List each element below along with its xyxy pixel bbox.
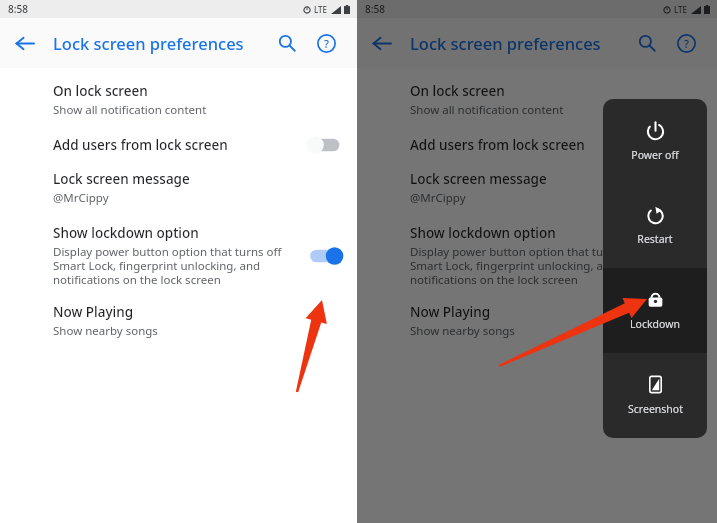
staticText: Power off: [631, 148, 679, 162]
staticText: LTE: [314, 4, 328, 15]
button[interactable]: Help: [667, 24, 705, 62]
button[interactable]: Power off: [603, 99, 707, 183]
button[interactable]: Now Playing: [0, 303, 357, 339]
staticText: LTE: [674, 4, 688, 15]
staticText: Show all notification content: [410, 102, 564, 118]
staticText: Lock screen message: [53, 170, 190, 188]
button[interactable]: Help: [307, 24, 345, 62]
staticText: Display power button option that turns o…: [53, 244, 297, 287]
staticText: Now Playing: [410, 303, 491, 321]
button[interactable]: Screenshot: [603, 353, 707, 438]
button[interactable]: Show lockdown option: [357, 224, 717, 287]
staticText: Show nearby songs: [410, 323, 515, 339]
staticText: On lock screen: [410, 82, 505, 100]
staticText: Screenshot: [628, 402, 683, 416]
staticText: Now Playing: [53, 303, 134, 321]
staticText: Restart: [637, 232, 673, 246]
staticText: Display power button option that turns o…: [410, 244, 657, 287]
button[interactable]: On lock screen: [357, 82, 717, 118]
staticText: Show lockdown option: [53, 224, 199, 242]
staticText: Lock screen preferences: [53, 32, 244, 54]
button[interactable]: Show lockdown option: [0, 224, 357, 287]
staticText: @MrCippy: [410, 190, 466, 206]
button[interactable]: Back: [5, 24, 43, 62]
button[interactable]: Off: [305, 134, 345, 156]
staticText: 8:58: [365, 2, 385, 16]
button[interactable]: Lock screen message: [0, 170, 357, 206]
button[interactable]: Back: [362, 24, 400, 62]
staticText: ?: [684, 36, 689, 51]
staticText: 8:58: [8, 2, 28, 16]
staticText: Add users from lock screen: [53, 136, 228, 154]
staticText: Show nearby songs: [53, 323, 158, 339]
staticText: Lockdown: [630, 317, 680, 331]
button[interactable]: Off: [665, 134, 705, 156]
button[interactable]: Now Playing: [357, 303, 717, 339]
staticText: Show lockdown option: [410, 224, 556, 242]
button[interactable]: Lockdown: [603, 268, 707, 353]
staticText: ?: [324, 36, 329, 51]
button[interactable]: Search: [268, 24, 306, 62]
staticText: @MrCippy: [53, 190, 109, 206]
button[interactable]: Lock screen message: [357, 170, 717, 206]
staticText: On lock screen: [53, 82, 148, 100]
button[interactable]: On lock screen: [0, 82, 357, 118]
staticText: Add users from lock screen: [410, 136, 585, 154]
button[interactable]: On: [305, 245, 345, 267]
button[interactable]: Restart: [603, 183, 707, 268]
staticText: Lock screen preferences: [410, 32, 601, 54]
staticText: Show all notification content: [53, 102, 207, 118]
button[interactable]: Search: [628, 24, 666, 62]
button[interactable]: Add users from lock screen: [0, 134, 357, 156]
button[interactable]: Add users from lock screen: [357, 134, 717, 156]
staticText: Lock screen message: [410, 170, 547, 188]
